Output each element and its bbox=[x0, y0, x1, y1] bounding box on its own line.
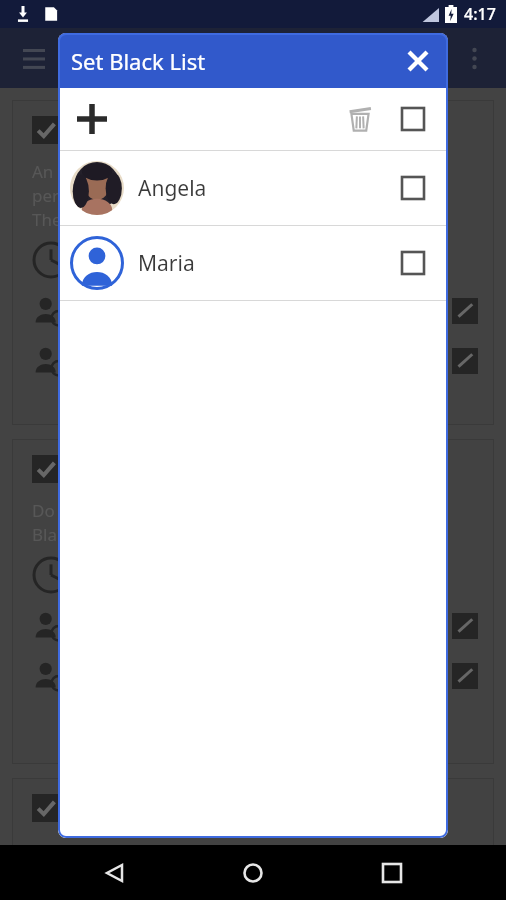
staticText: An a perf The bbox=[32, 160, 68, 231]
button[interactable]: Menu bbox=[12, 36, 56, 80]
staticText: 4:17 bbox=[464, 3, 496, 25]
staticText: Set Black List bbox=[71, 46, 206, 76]
staticText: Angela bbox=[138, 174, 207, 203]
staticText: Maria bbox=[138, 249, 195, 278]
button[interactable]: Delete selected bbox=[336, 95, 384, 143]
button[interactable]: Home bbox=[229, 849, 277, 897]
button[interactable]: Back bbox=[91, 849, 139, 897]
button[interactable]: Select all bbox=[390, 96, 436, 142]
staticText: Do n Blac bbox=[32, 499, 70, 546]
button[interactable]: Close bbox=[396, 39, 440, 83]
button[interactable]: Add contact bbox=[68, 95, 116, 143]
button[interactable]: Select Maria bbox=[390, 240, 436, 286]
button[interactable]: Angela bbox=[58, 151, 448, 225]
button[interactable]: Maria bbox=[58, 226, 448, 300]
button[interactable]: More options bbox=[452, 36, 496, 80]
button[interactable]: Recent apps bbox=[368, 849, 416, 897]
button[interactable]: Select Angela bbox=[390, 165, 436, 211]
